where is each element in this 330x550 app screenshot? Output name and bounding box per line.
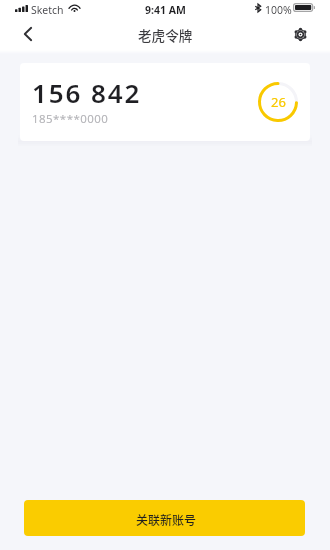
staticText: 9:41 AM xyxy=(145,3,186,17)
staticText: 关联新账号 xyxy=(136,511,197,528)
button[interactable]: 关联新账号 xyxy=(24,500,305,536)
button[interactable]: Settings xyxy=(285,20,315,49)
staticText: 26 xyxy=(271,93,286,111)
staticText: 老虎令牌 xyxy=(138,25,193,45)
button[interactable]: Back xyxy=(10,20,46,49)
staticText: Sketch xyxy=(31,3,64,17)
staticText: 185****0000 xyxy=(32,111,109,127)
staticText: 100% xyxy=(265,3,292,17)
button[interactable]: 156 842 xyxy=(20,63,310,141)
staticText: 156 842 xyxy=(32,75,142,110)
